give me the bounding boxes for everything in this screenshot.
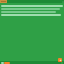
button[interactable]: Profile [60,61,64,64]
button[interactable] [1,14,61,16]
button[interactable]: Add [58,58,62,62]
button[interactable] [1,5,63,7]
button[interactable] [1,11,56,13]
button[interactable] [1,8,60,10]
button[interactable]: App title [0,0,7,3]
button[interactable]: Activity [4,61,10,64]
button[interactable]: More options [61,0,64,3]
button[interactable]: Home [0,61,4,64]
